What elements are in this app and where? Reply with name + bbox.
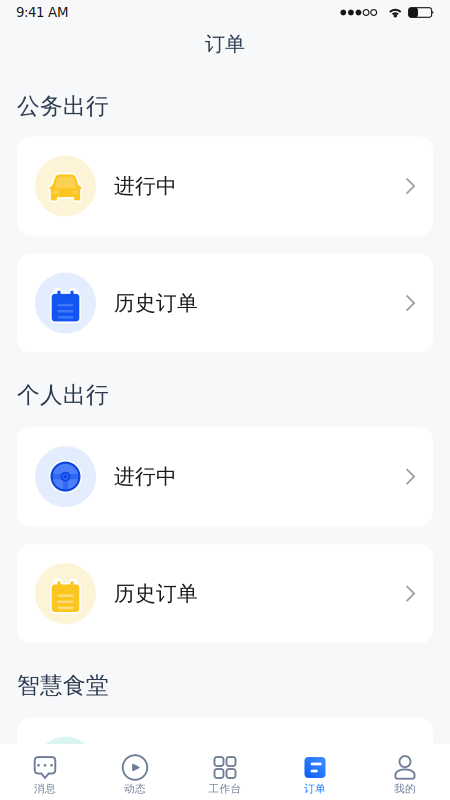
staticText: 进行中 bbox=[114, 173, 177, 199]
button[interactable]: 工作台 bbox=[180, 744, 270, 800]
staticText: 公务出行 bbox=[17, 92, 109, 121]
button[interactable]: 消息 bbox=[0, 744, 90, 800]
button[interactable]: 动态 bbox=[90, 744, 180, 800]
button[interactable]: 订单 bbox=[0, 25, 450, 63]
staticText: 消息 bbox=[34, 782, 56, 795]
staticText: 订单 bbox=[304, 782, 326, 795]
button[interactable]: 历史订单 bbox=[17, 254, 433, 353]
staticText: 动态 bbox=[124, 782, 146, 795]
button[interactable]: 进行中 bbox=[17, 427, 433, 526]
button[interactable]: 点餐 bbox=[17, 718, 433, 800]
staticText: 进行中 bbox=[114, 464, 177, 490]
staticText: 个人出行 bbox=[17, 381, 109, 409]
staticText: 9:41 AM bbox=[16, 5, 69, 20]
button[interactable]: 订单 bbox=[270, 744, 360, 800]
staticText: 工作台 bbox=[208, 782, 241, 795]
staticText: 我的 bbox=[394, 782, 416, 795]
staticText: 历史订单 bbox=[114, 581, 198, 607]
button[interactable]: 进行中 bbox=[17, 137, 433, 236]
button[interactable]: 我的 bbox=[360, 744, 450, 800]
staticText: 订单 bbox=[205, 31, 245, 57]
staticText: 点餐 bbox=[114, 754, 156, 780]
staticText: 智慧食堂 bbox=[17, 671, 109, 700]
staticText: 历史订单 bbox=[114, 290, 198, 316]
button[interactable]: 历史订单 bbox=[17, 544, 433, 643]
